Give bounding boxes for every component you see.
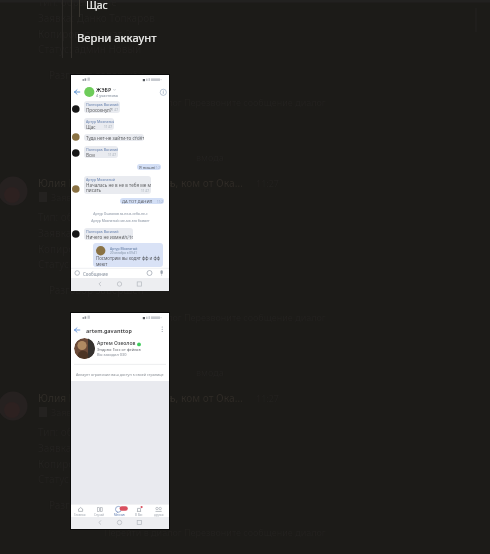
staticText: ДА ТОТ ДАНИЛ bbox=[122, 199, 153, 204]
button[interactable]: Screenshot of profile bbox=[71, 313, 169, 529]
staticText: Вы заходил 030 bbox=[97, 352, 127, 357]
staticText: Началась не в не в тебя ме могу писать bbox=[86, 182, 151, 194]
staticText: 11:27 bbox=[134, 136, 143, 140]
staticText: Заявка на услугу bbox=[51, 191, 124, 203]
staticText: В Вас bbox=[135, 513, 143, 517]
staticText: Заявка: Данко Топкаров bbox=[38, 441, 155, 455]
staticText: Перейти в диалог bbox=[104, 311, 182, 323]
staticText: Артур Мохнатый bbox=[110, 246, 138, 251]
staticText: 4 участника bbox=[96, 93, 118, 98]
staticText: Полторак Василий bbox=[86, 147, 118, 152]
staticText: Разговор завершён bbox=[49, 498, 144, 512]
staticText: Копировать в чат 2 bbox=[38, 457, 131, 471]
staticText: Щас bbox=[86, 124, 96, 130]
staticText: Эндрюс Госс от фейков bbox=[97, 347, 141, 352]
staticText: Артем Озеолов bbox=[97, 340, 136, 347]
staticText: Юлия Ивановна Топкарова bbox=[38, 391, 173, 405]
staticText: Аккаунт ограничил ваш доступ к своей стр… bbox=[76, 372, 164, 377]
staticText: Посмотрим вы ходят фф и фф меют bbox=[96, 255, 160, 267]
button[interactable]: ДА ТОТ ДАНИЛ bbox=[120, 198, 164, 204]
staticText: Копировать в чат 2 bbox=[38, 27, 131, 41]
staticText: Тип: обращение bbox=[38, 0, 117, 9]
staticText: Статус: админ Новый bbox=[38, 42, 142, 56]
staticText: 11:27 bbox=[141, 189, 150, 193]
button[interactable]: Туда нет-не зайти-то стоять bbox=[84, 134, 144, 141]
staticText: Главная bbox=[74, 513, 86, 517]
staticText: artem.gavanttop bbox=[86, 327, 132, 334]
button[interactable]: Главная bbox=[71, 504, 89, 517]
staticText: 11:2 bbox=[157, 200, 163, 204]
staticText: 11:27 bbox=[104, 125, 113, 129]
staticText: Туда нет-не зайти-то стоять bbox=[86, 135, 144, 141]
staticText: Полторак Василий bbox=[86, 229, 119, 234]
staticText: Тип: обращение bbox=[38, 425, 117, 439]
staticText: Копировать в чат 2 bbox=[38, 242, 131, 256]
staticText: Ничего не измнил, то вы bbox=[86, 234, 133, 240]
staticText: ЖЭБР bbox=[96, 86, 112, 93]
staticText: Артур Мохнатый: ме-ме-кто бывает bbox=[91, 218, 150, 223]
staticText: Статус: админ Новый bbox=[38, 472, 142, 486]
button[interactable]: Случай bbox=[90, 504, 108, 517]
staticText: 20 октября в 09:41 bbox=[110, 251, 137, 255]
staticText: Артур Мохнатый bbox=[86, 119, 114, 124]
staticText: Статус: админ Новый bbox=[38, 257, 142, 271]
staticText: Щас bbox=[86, 0, 108, 12]
staticText: Артур Мохнатый bbox=[86, 177, 116, 182]
button[interactable]: друзья bbox=[150, 504, 168, 517]
staticText: ь, ком от Ока… bbox=[170, 391, 243, 405]
button[interactable]: В Вас bbox=[130, 504, 148, 517]
staticText: Заявка: Данко Топкаров bbox=[38, 226, 155, 240]
staticText: Мессаж bbox=[114, 513, 125, 517]
staticText: Я пишю bbox=[139, 165, 155, 170]
staticText: Заявка: Данко Топкаров bbox=[38, 11, 155, 25]
staticText: Разговор завершён bbox=[49, 283, 144, 297]
staticText: Заявка на услугу bbox=[51, 406, 124, 418]
staticText: друзья bbox=[154, 513, 164, 517]
button[interactable]: Сообщение bbox=[71, 268, 169, 278]
staticText: Сообщение bbox=[83, 271, 108, 277]
staticText: Случай bbox=[94, 513, 105, 517]
button[interactable]: Полторак Василий bbox=[84, 228, 133, 240]
button[interactable]: Screenshot of chat bbox=[71, 75, 169, 290]
staticText: Верни аккаунт bbox=[77, 30, 157, 45]
staticText: Перейти в диалог bbox=[104, 526, 182, 538]
staticText: ь, ком от Ока… bbox=[170, 176, 243, 190]
staticText: Всм bbox=[86, 152, 95, 158]
staticText: Просохнул? bbox=[86, 107, 112, 113]
staticText: 11:27 bbox=[123, 235, 132, 239]
button[interactable]: Артур Мохнатый bbox=[84, 176, 151, 194]
staticText: Юлия Ивановна Топкарова bbox=[38, 176, 173, 190]
staticText: Тип: обращение bbox=[38, 210, 117, 224]
staticText: Артур Ошкоков за-не-в-себя-не-с bbox=[93, 211, 148, 216]
staticText: 11:27 bbox=[108, 153, 117, 157]
button[interactable]: Полторак Василий bbox=[84, 101, 120, 113]
button[interactable]: Артур Мохнатый bbox=[84, 118, 114, 130]
button[interactable]: Полторак Василий bbox=[84, 146, 118, 158]
staticText: Полторак Василий bbox=[86, 102, 119, 107]
staticText: 11:2 bbox=[154, 166, 160, 170]
staticText: Перейти в диалог bbox=[104, 96, 182, 108]
staticText: 11:27 bbox=[110, 108, 119, 112]
staticText: Разговор завершён bbox=[49, 68, 144, 82]
button[interactable]: Мессаж bbox=[110, 504, 128, 517]
button[interactable]: Я пишю bbox=[137, 164, 161, 170]
